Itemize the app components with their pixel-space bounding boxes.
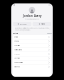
button[interactable]: More <box>48 3 51 6</box>
staticText: Designing calm interfaces for everyday t… <box>14 27 49 31</box>
staticText: See All <box>47 33 51 34</box>
button[interactable]: Location <box>13 43 51 48</box>
staticText: Product Designer · SF <box>24 18 39 20</box>
button[interactable]: Blocked <box>13 65 51 69</box>
button[interactable]: Message <box>13 22 31 26</box>
button[interactable]: Shared Files <box>13 60 51 65</box>
staticText: Message <box>20 23 27 25</box>
staticText: Location <box>14 45 20 46</box>
staticText: Blocked <box>14 66 20 68</box>
button[interactable]: Follow <box>33 22 51 26</box>
button[interactable]: Phone <box>13 39 51 43</box>
button[interactable]: Privacy <box>13 52 51 56</box>
button[interactable]: See All <box>47 33 51 34</box>
button[interactable]: Archive <box>13 56 51 60</box>
staticText: Phone <box>14 40 19 42</box>
staticText: Notifications <box>14 49 22 51</box>
staticText: Archive <box>14 57 20 59</box>
button[interactable]: Notifications <box>13 48 51 52</box>
button[interactable]: Back <box>12 3 16 6</box>
staticText: Details <box>13 33 18 34</box>
staticText: Privacy <box>14 53 20 55</box>
staticText: Shared Files <box>14 62 23 63</box>
staticText: Email <box>14 36 17 38</box>
staticText: Follow <box>41 23 45 25</box>
staticText: Jordan Avery <box>23 14 41 18</box>
button[interactable]: Email <box>13 35 51 39</box>
